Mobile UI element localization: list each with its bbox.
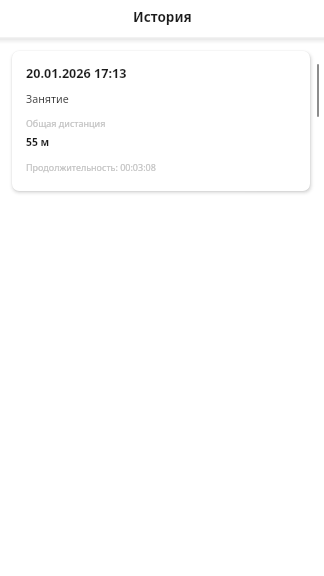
other: Scroll position bbox=[317, 64, 319, 117]
button[interactable]: 20.01.2026 17:13 bbox=[12, 51, 310, 191]
staticText: 20.01.2026 17:13 bbox=[26, 65, 127, 82]
staticText: Общая дистанция bbox=[26, 117, 106, 129]
staticText: Продолжительность: 00:03:08 bbox=[26, 161, 156, 173]
staticText: История bbox=[133, 8, 192, 26]
staticText: Занятие bbox=[26, 91, 69, 106]
staticText: 55 м bbox=[26, 135, 50, 149]
